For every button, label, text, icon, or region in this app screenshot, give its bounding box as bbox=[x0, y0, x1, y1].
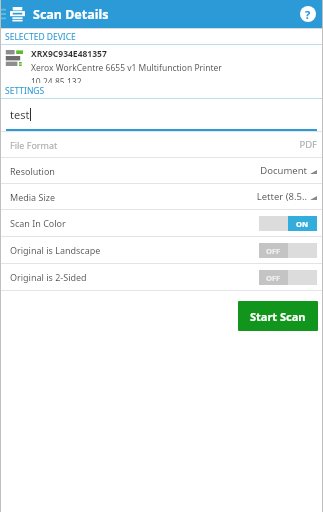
button[interactable]: test bbox=[0, 99, 323, 131]
staticText: Scan In Color bbox=[10, 217, 66, 229]
staticText: ON bbox=[296, 219, 309, 229]
staticText: File Format bbox=[10, 139, 58, 151]
staticText: Xerox WorkCentre 6655 v1 Multifunction P… bbox=[31, 62, 222, 74]
button[interactable]: Media Size bbox=[0, 184, 323, 209]
button[interactable]: Resolution bbox=[0, 158, 323, 183]
button[interactable]: Start Scan bbox=[238, 301, 318, 331]
staticText: SETTINGS bbox=[5, 85, 45, 97]
staticText: Start Scan bbox=[250, 309, 306, 324]
staticText: Resolution bbox=[10, 165, 55, 177]
staticText: ? bbox=[305, 7, 311, 22]
staticText: OFF bbox=[266, 273, 281, 283]
staticText: 10.24.85.132 bbox=[31, 76, 82, 83]
staticText: Original is Landscape bbox=[10, 244, 101, 256]
staticText: OFF bbox=[266, 246, 281, 256]
button[interactable]: XRX9C934E481357 bbox=[0, 45, 323, 83]
staticText: Original is 2-Sided bbox=[10, 271, 87, 283]
button[interactable]: Original is 2-Sided bbox=[0, 264, 323, 290]
button[interactable]: Original is Landscape bbox=[0, 237, 323, 263]
staticText: SELECTED DEVICE bbox=[5, 31, 76, 43]
staticText: Document bbox=[260, 164, 307, 177]
staticText: test bbox=[10, 107, 30, 122]
staticText: Letter (8.5.. bbox=[256, 190, 307, 203]
staticText: PDF bbox=[299, 138, 317, 151]
button[interactable]: Scan In Color bbox=[0, 210, 323, 236]
staticText: Scan Details bbox=[33, 6, 109, 23]
button[interactable]: Help bbox=[300, 6, 316, 22]
staticText: Media Size bbox=[10, 191, 56, 203]
staticText: XRX9C934E481357 bbox=[31, 48, 107, 60]
